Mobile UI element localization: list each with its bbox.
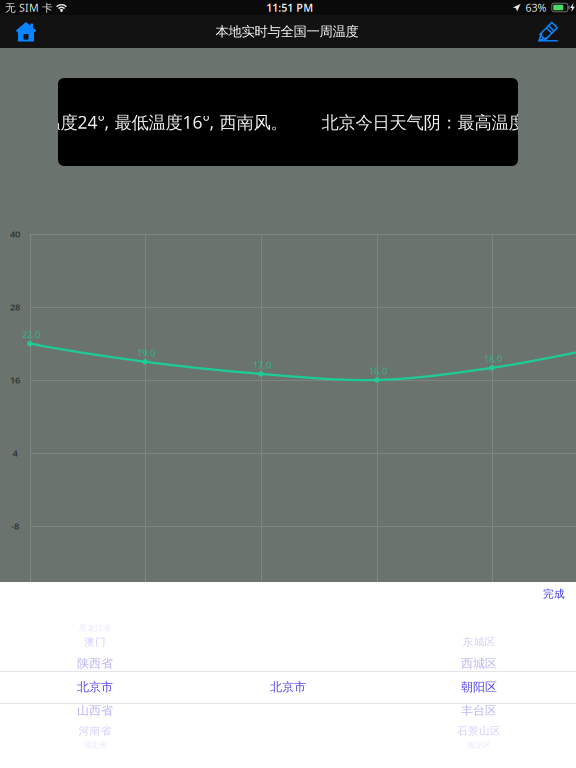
button[interactable]: Home	[4, 15, 48, 48]
staticText: 高温度24°, 最低温度16°, 西南风。 北京今日天气阴：最高温度24	[26, 110, 545, 133]
staticText: 63%	[526, 0, 547, 15]
staticText: 丰台区	[461, 703, 497, 718]
staticText: 完成	[543, 587, 565, 600]
staticText: 4	[12, 447, 17, 459]
staticText: 北京市	[270, 680, 306, 694]
button[interactable]: Edit	[526, 15, 570, 48]
staticText: 山西省	[77, 703, 113, 718]
staticText: 黑龙江省	[79, 623, 111, 633]
staticText: 澳门	[84, 635, 106, 648]
staticText: 40	[10, 228, 20, 240]
staticText: -8	[11, 520, 19, 532]
staticText: 东城区	[462, 635, 495, 648]
staticText: 西城区	[461, 656, 497, 671]
staticText: 无 SIM 卡	[5, 0, 53, 15]
staticText: 石景山区	[457, 724, 501, 737]
staticText: 17.0	[253, 359, 271, 371]
staticText: 河南省	[78, 724, 111, 737]
staticText: 湖北省	[83, 740, 107, 750]
staticText: 18.0	[484, 353, 502, 365]
staticText: 16.0	[369, 365, 387, 377]
staticText: 朝阳区	[461, 680, 497, 694]
staticText: 本地实时与全国一周温度	[215, 23, 358, 40]
button[interactable]: 完成	[531, 582, 576, 606]
staticText: 22.0	[22, 328, 40, 341]
staticText: 19.0	[137, 347, 155, 359]
staticText: 海淀区	[467, 740, 491, 750]
staticText: 11:51 PM	[266, 0, 313, 15]
staticText: 28	[10, 301, 20, 313]
staticText: 16	[10, 374, 20, 386]
staticText: 陕西省	[77, 656, 113, 671]
staticText: 北京市	[77, 680, 113, 694]
